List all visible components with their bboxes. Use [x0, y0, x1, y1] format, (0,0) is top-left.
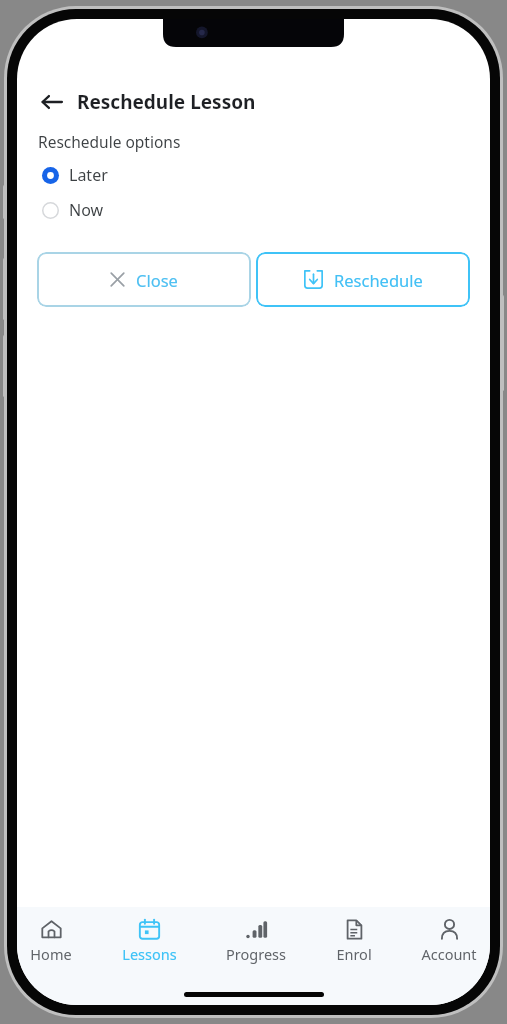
button[interactable]: Reschedule	[256, 252, 470, 307]
staticText: Progress	[226, 944, 286, 964]
button[interactable]: Now	[37, 195, 470, 225]
staticText: Lessons	[122, 944, 177, 964]
button[interactable]: Account	[418, 918, 480, 964]
button[interactable]: Enrol	[333, 918, 375, 964]
staticText: Reschedule	[334, 269, 423, 291]
button[interactable]: Home	[27, 918, 75, 964]
staticText: Now	[69, 199, 104, 221]
staticText: Account	[421, 944, 477, 964]
button[interactable]: Back	[37, 87, 67, 117]
button[interactable]: Progress	[223, 918, 289, 964]
staticText: Reschedule Lesson	[77, 89, 256, 115]
staticText: Reschedule options	[38, 131, 181, 152]
staticText: Close	[136, 269, 178, 291]
staticText: Later	[69, 164, 108, 186]
button[interactable]: Close	[37, 252, 251, 307]
staticText: Enrol	[336, 944, 372, 964]
staticText: Home	[30, 944, 72, 964]
button[interactable]: Lessons	[119, 918, 180, 964]
button[interactable]: Later	[37, 160, 470, 190]
